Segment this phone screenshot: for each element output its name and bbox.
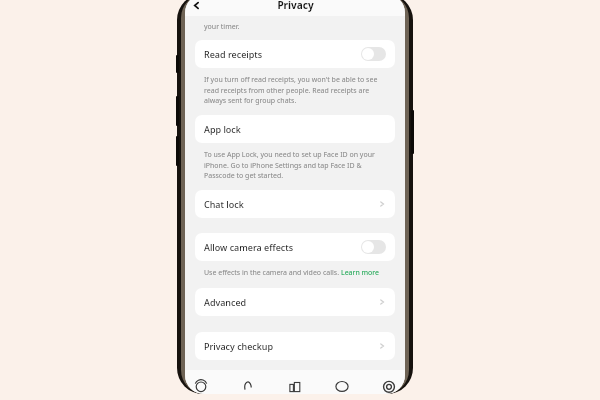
button[interactable]: App lock	[195, 115, 395, 143]
button[interactable]: Read receipts	[195, 40, 395, 68]
button[interactable]: Settings	[381, 378, 397, 394]
staticText: If you turn off read receipts, you won't…	[204, 75, 378, 105]
button[interactable]: Back	[188, 0, 204, 13]
button[interactable]: Chat lock	[195, 190, 395, 218]
staticText: Advanced	[204, 296, 247, 308]
button[interactable]: Privacy checkup	[195, 332, 395, 360]
staticText: Privacy	[277, 0, 314, 12]
staticText: Read receipts	[204, 48, 263, 60]
staticText: Use effects in the camera and video call…	[204, 268, 341, 278]
button[interactable]: Advanced	[195, 288, 395, 316]
staticText: your timer.	[204, 22, 240, 32]
button[interactable]: Toggle Allow camera effects	[361, 240, 386, 254]
staticText: To use App Lock, you need to set up Face…	[204, 150, 375, 180]
staticText: App lock	[204, 123, 241, 135]
button[interactable]: Allow camera effects	[195, 233, 395, 261]
staticText: Privacy checkup	[204, 340, 274, 352]
button[interactable]: Communities	[287, 378, 303, 394]
button[interactable]: Calls	[240, 378, 256, 394]
staticText: Chat lock	[204, 198, 244, 210]
button[interactable]: Toggle Read receipts	[361, 47, 386, 61]
button[interactable]: Learn more	[341, 268, 380, 278]
button[interactable]: Chats	[334, 378, 350, 394]
staticText: Allow camera effects	[204, 241, 294, 253]
button[interactable]: Updates	[193, 378, 209, 394]
